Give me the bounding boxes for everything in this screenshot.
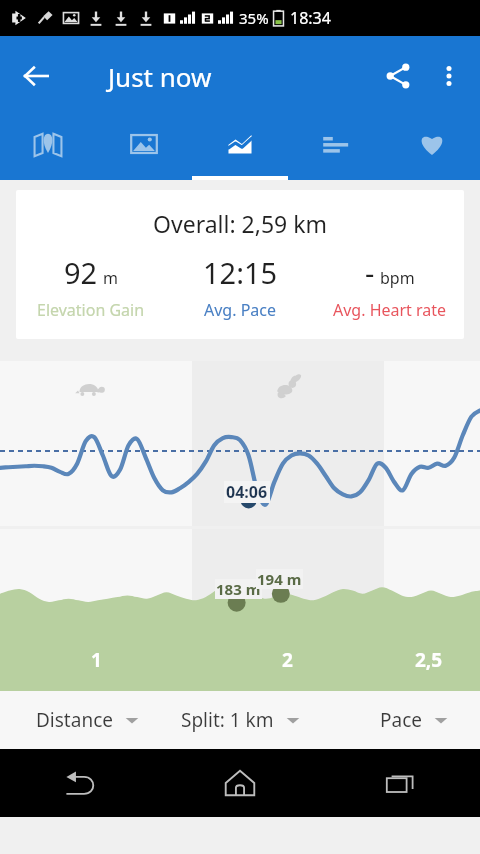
staticText: m	[103, 267, 118, 289]
staticText: Overall: 2,59 km	[16, 208, 464, 239]
staticText: Split: 1 km	[181, 707, 274, 733]
button[interactable]: Pace	[328, 691, 480, 749]
button[interactable]: Share	[372, 50, 424, 102]
staticText: -	[365, 253, 375, 292]
button[interactable]: Recent apps	[320, 749, 480, 817]
button[interactable]: Photos	[96, 116, 192, 180]
button[interactable]: Map	[0, 116, 96, 180]
staticText: Pace	[380, 707, 422, 733]
staticText: 35%	[239, 8, 269, 28]
staticText: 183 m	[216, 579, 261, 599]
staticText: Avg. Heart rate	[333, 299, 447, 321]
staticText: Avg. Pace	[204, 299, 277, 321]
button[interactable]: Charts	[192, 116, 288, 180]
staticText: Distance	[36, 707, 113, 733]
staticText: 18:34	[290, 7, 331, 29]
staticText: bpm	[380, 267, 415, 289]
staticText: 1	[91, 647, 102, 673]
button[interactable]: Distance	[0, 691, 153, 749]
staticText: 92	[64, 253, 98, 292]
staticText: Elevation Gain	[37, 299, 145, 321]
button[interactable]: More options	[424, 51, 474, 101]
button[interactable]: Heart rate	[384, 116, 480, 180]
staticText: 194 m	[257, 569, 302, 589]
staticText: 2,5	[415, 647, 443, 673]
button[interactable]: Back	[10, 50, 62, 102]
staticText: 04:06	[226, 481, 268, 503]
button[interactable]: Overall: 2,59 km	[16, 190, 464, 339]
staticText: 2	[282, 647, 293, 673]
button[interactable]: Home	[160, 749, 320, 817]
button[interactable]: Split: 1 km	[153, 691, 328, 749]
button[interactable]: Back	[0, 749, 160, 817]
staticText: Just now	[108, 59, 212, 94]
button[interactable]: Splits	[288, 116, 384, 180]
staticText: 12:15	[203, 253, 278, 292]
